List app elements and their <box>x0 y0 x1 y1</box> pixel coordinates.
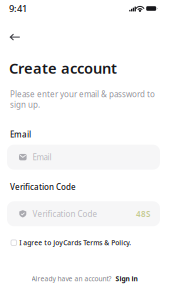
staticText: I agree to JoyCards Terms & Policy. <box>19 238 131 247</box>
staticText: Create account <box>9 58 117 78</box>
staticText: 9:41 <box>9 2 27 15</box>
button[interactable]: Back <box>0 17 29 47</box>
button[interactable]: Already have an account? <box>0 274 169 300</box>
button[interactable]: I agree to JoyCards Terms & Policy. <box>0 226 169 251</box>
staticText: Already have an account? <box>31 274 111 283</box>
staticText: Verification Code <box>10 182 76 192</box>
staticText: Email <box>33 152 52 162</box>
staticText: Verification Code <box>33 208 98 219</box>
staticText: Sign in <box>115 274 137 283</box>
button[interactable]: 48S <box>136 208 150 219</box>
staticText: 48S <box>136 208 150 219</box>
staticText: Please enter your email & password to si… <box>10 89 155 110</box>
staticText: Email <box>10 129 31 140</box>
